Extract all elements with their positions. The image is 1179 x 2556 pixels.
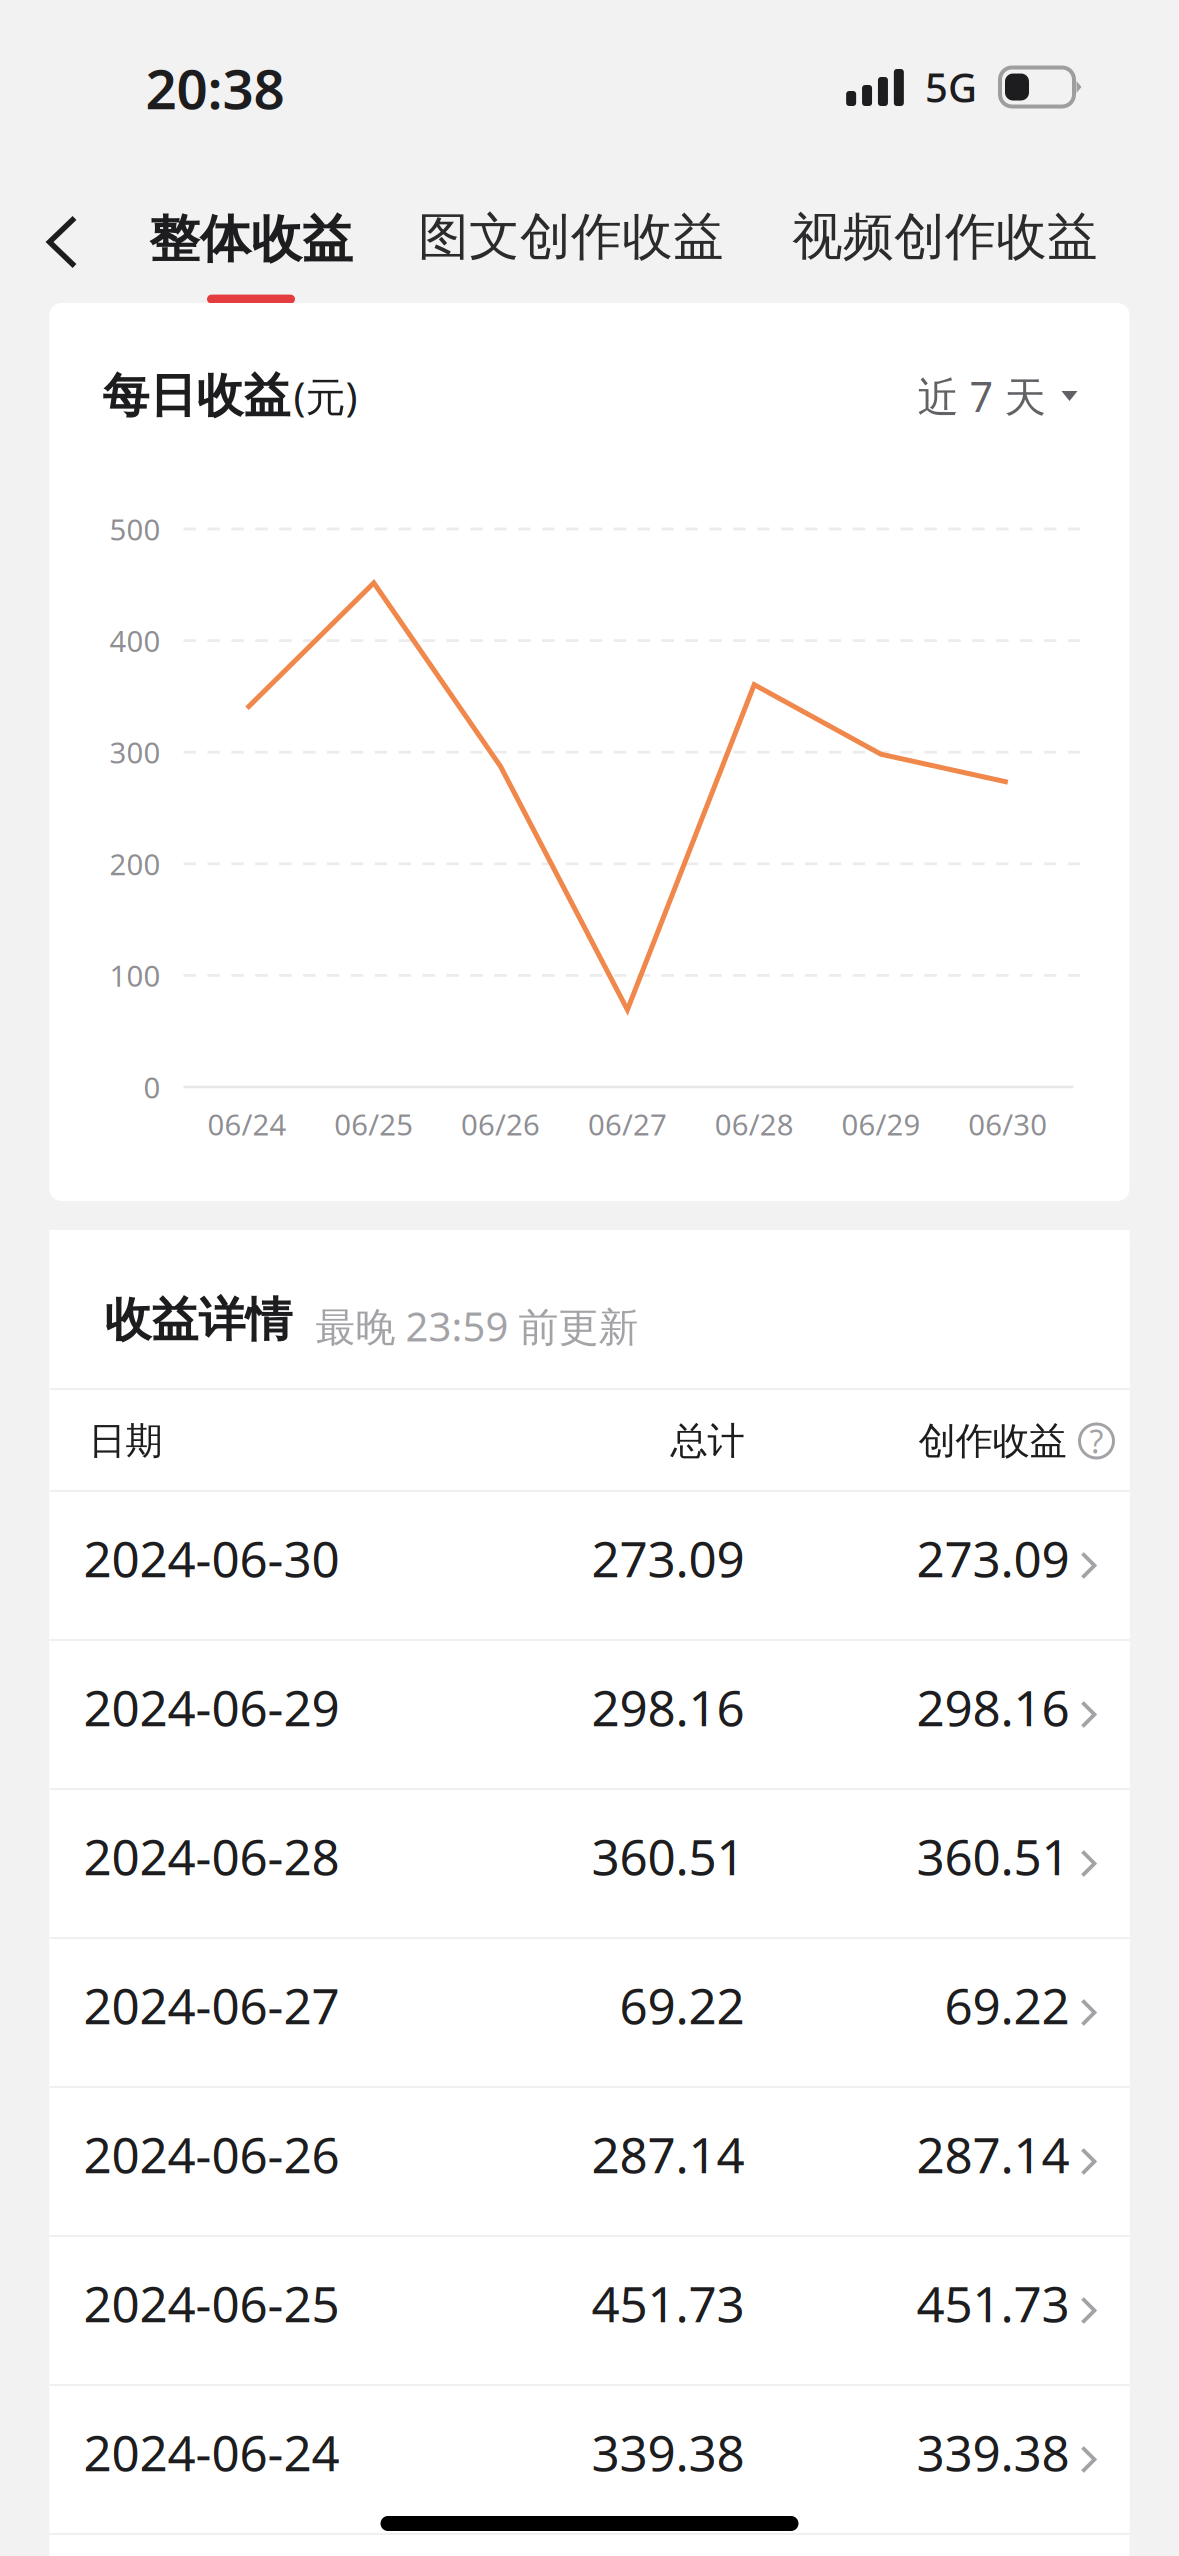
staticText: 2024-06-24: [83, 2419, 339, 2485]
button[interactable]: Back: [22, 191, 101, 293]
staticText: 273.09: [916, 1525, 1069, 1591]
staticText: 收益详情: [104, 1291, 292, 1349]
staticText: 5G: [925, 60, 977, 113]
staticText: 2024-06-30: [83, 1525, 339, 1591]
staticText: 339.38: [591, 2419, 744, 2485]
staticText: 298.16: [591, 1674, 744, 1740]
staticText: 69.22: [619, 1972, 744, 2038]
staticText: 298.16: [916, 1674, 1069, 1740]
staticText: 06/25: [334, 1104, 413, 1143]
staticText: 视频创作收益: [792, 206, 1098, 268]
staticText: 2024-06-29: [83, 1674, 339, 1740]
button[interactable]: 2024-06-26: [49, 2088, 1129, 2235]
button[interactable]: 近 7 天: [917, 369, 1077, 423]
button[interactable]: 2024-06-28: [49, 1790, 1129, 1937]
staticText: 2024-06-26: [83, 2121, 339, 2187]
staticText: (元): [293, 369, 357, 422]
staticText: 451.73: [591, 2270, 744, 2336]
button[interactable]: 2024-06-29: [49, 1641, 1129, 1788]
staticText: 300: [109, 733, 160, 772]
staticText: 06/29: [841, 1104, 920, 1143]
staticText: 100: [109, 956, 160, 995]
staticText: 287.14: [916, 2121, 1069, 2187]
button[interactable]: 整体收益: [123, 200, 379, 312]
staticText: 400: [109, 621, 160, 660]
button[interactable]: 2024-06-30: [49, 1492, 1129, 1639]
button[interactable]: 图文创作收益: [392, 186, 750, 288]
staticText: 69.22: [944, 1972, 1069, 2038]
staticText: 06/27: [588, 1104, 667, 1143]
button[interactable]: 2024-06-25: [49, 2237, 1129, 2384]
staticText: 06/30: [968, 1104, 1047, 1143]
staticText: 360.51: [591, 1823, 744, 1889]
staticText: 200: [109, 844, 160, 883]
staticText: 2024-06-25: [83, 2270, 339, 2336]
staticText: 总计: [670, 1418, 744, 1464]
staticText: 近 7 天: [917, 369, 1045, 423]
staticText: 06/28: [715, 1104, 794, 1143]
button[interactable]: 视频创作收益: [766, 186, 1124, 288]
staticText: 0: [143, 1067, 160, 1106]
staticText: 整体收益: [149, 208, 353, 271]
staticText: 06/26: [461, 1104, 540, 1143]
staticText: 20:38: [145, 52, 284, 124]
staticText: 最晚 23:59 前更新: [315, 1299, 638, 1352]
staticText: 2024-06-28: [83, 1823, 339, 1889]
staticText: 273.09: [591, 1525, 744, 1591]
staticText: 日期: [88, 1418, 162, 1464]
button[interactable]: 2024-06-27: [49, 1939, 1129, 2086]
staticText: 2024-06-27: [83, 1972, 339, 2038]
staticText: 360.51: [916, 1823, 1069, 1889]
staticText: 06/24: [207, 1104, 286, 1143]
staticText: 图文创作收益: [418, 206, 724, 268]
staticText: 451.73: [916, 2270, 1069, 2336]
staticText: 创作收益: [918, 1418, 1066, 1464]
staticText: 339.38: [916, 2419, 1069, 2485]
staticText: 500: [109, 509, 160, 548]
staticText: 每日收益: [102, 367, 290, 425]
staticText: 287.14: [591, 2121, 744, 2187]
button[interactable]: 2024-06-24: [49, 2386, 1129, 2533]
staticText: ?: [1089, 1420, 1103, 1462]
